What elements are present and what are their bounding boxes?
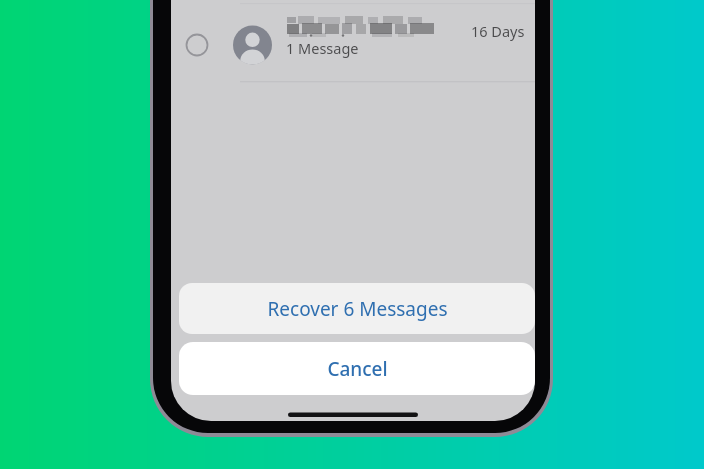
staticText: Cancel [327,356,388,382]
button[interactable]: Message thread, 1 Message, 16 Days [214,4,535,81]
button[interactable]: Recover 6 Messages [179,283,535,334]
staticText: 16 Days [471,21,525,41]
staticText: 1 Message [286,38,359,58]
staticText: Recover 6 Messages [267,296,448,322]
button[interactable]: Cancel [179,342,535,395]
button[interactable]: Select message [185,33,210,58]
